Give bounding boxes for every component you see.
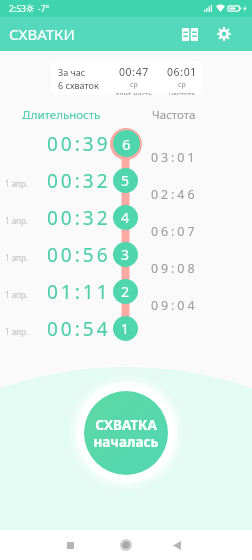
button[interactable]: History	[176, 20, 204, 48]
staticText: -7°	[38, 3, 50, 15]
staticText: 1 апр.	[5, 326, 28, 337]
button[interactable]: Home	[112, 531, 140, 559]
staticText: Длительность	[22, 107, 101, 119]
button[interactable]: 6	[113, 130, 140, 157]
staticText: 09:04	[151, 297, 198, 314]
button[interactable]: Settings	[210, 20, 238, 48]
staticText: За час	[58, 66, 86, 78]
staticText: частота	[169, 90, 195, 95]
staticText: 00:47	[119, 65, 149, 79]
staticText: 6	[122, 134, 131, 154]
staticText: 03:01	[151, 149, 198, 166]
staticText: 1 апр.	[5, 289, 28, 300]
button[interactable]: 5	[113, 168, 138, 193]
staticText: 1 апр.	[5, 215, 28, 226]
staticText: 00:32	[47, 205, 111, 231]
staticText: 06:01	[167, 65, 197, 79]
button[interactable]: Recent apps	[56, 531, 84, 559]
staticText: 09:08	[151, 260, 198, 277]
staticText: 00:54	[47, 316, 111, 342]
staticText: 1 апр.	[5, 178, 28, 189]
staticText: 1 апр.	[5, 252, 28, 263]
staticText: ср	[130, 80, 138, 90]
button[interactable]: СХВАТКА началась	[84, 391, 168, 475]
staticText: СХВАТКА началась	[93, 416, 159, 451]
staticText: СХВАТКИ	[9, 24, 75, 44]
button[interactable]: 4	[113, 205, 138, 230]
button[interactable]: 2	[113, 279, 138, 304]
button[interactable]: Back	[163, 531, 191, 559]
staticText: 6 схваток	[58, 79, 99, 91]
staticText: 06:07	[151, 223, 198, 240]
staticText: 00:32	[47, 168, 111, 194]
staticText: 1	[121, 319, 130, 338]
staticText: 01:11	[47, 279, 111, 305]
staticText: длит-ность	[115, 90, 153, 95]
staticText: 00:56	[47, 242, 111, 268]
staticText: 3	[121, 245, 130, 264]
staticText: 00:39	[47, 131, 111, 157]
staticText: Частота	[152, 107, 196, 119]
staticText: 4	[121, 208, 130, 227]
button[interactable]: 1	[113, 316, 138, 341]
staticText: 2:53	[9, 3, 26, 15]
button[interactable]: 3	[113, 242, 138, 267]
staticText: ср	[178, 80, 186, 90]
staticText: 2	[121, 282, 130, 301]
staticText: 02:46	[151, 186, 198, 203]
staticText: 5	[121, 171, 130, 190]
button[interactable]: За час	[51, 61, 202, 95]
